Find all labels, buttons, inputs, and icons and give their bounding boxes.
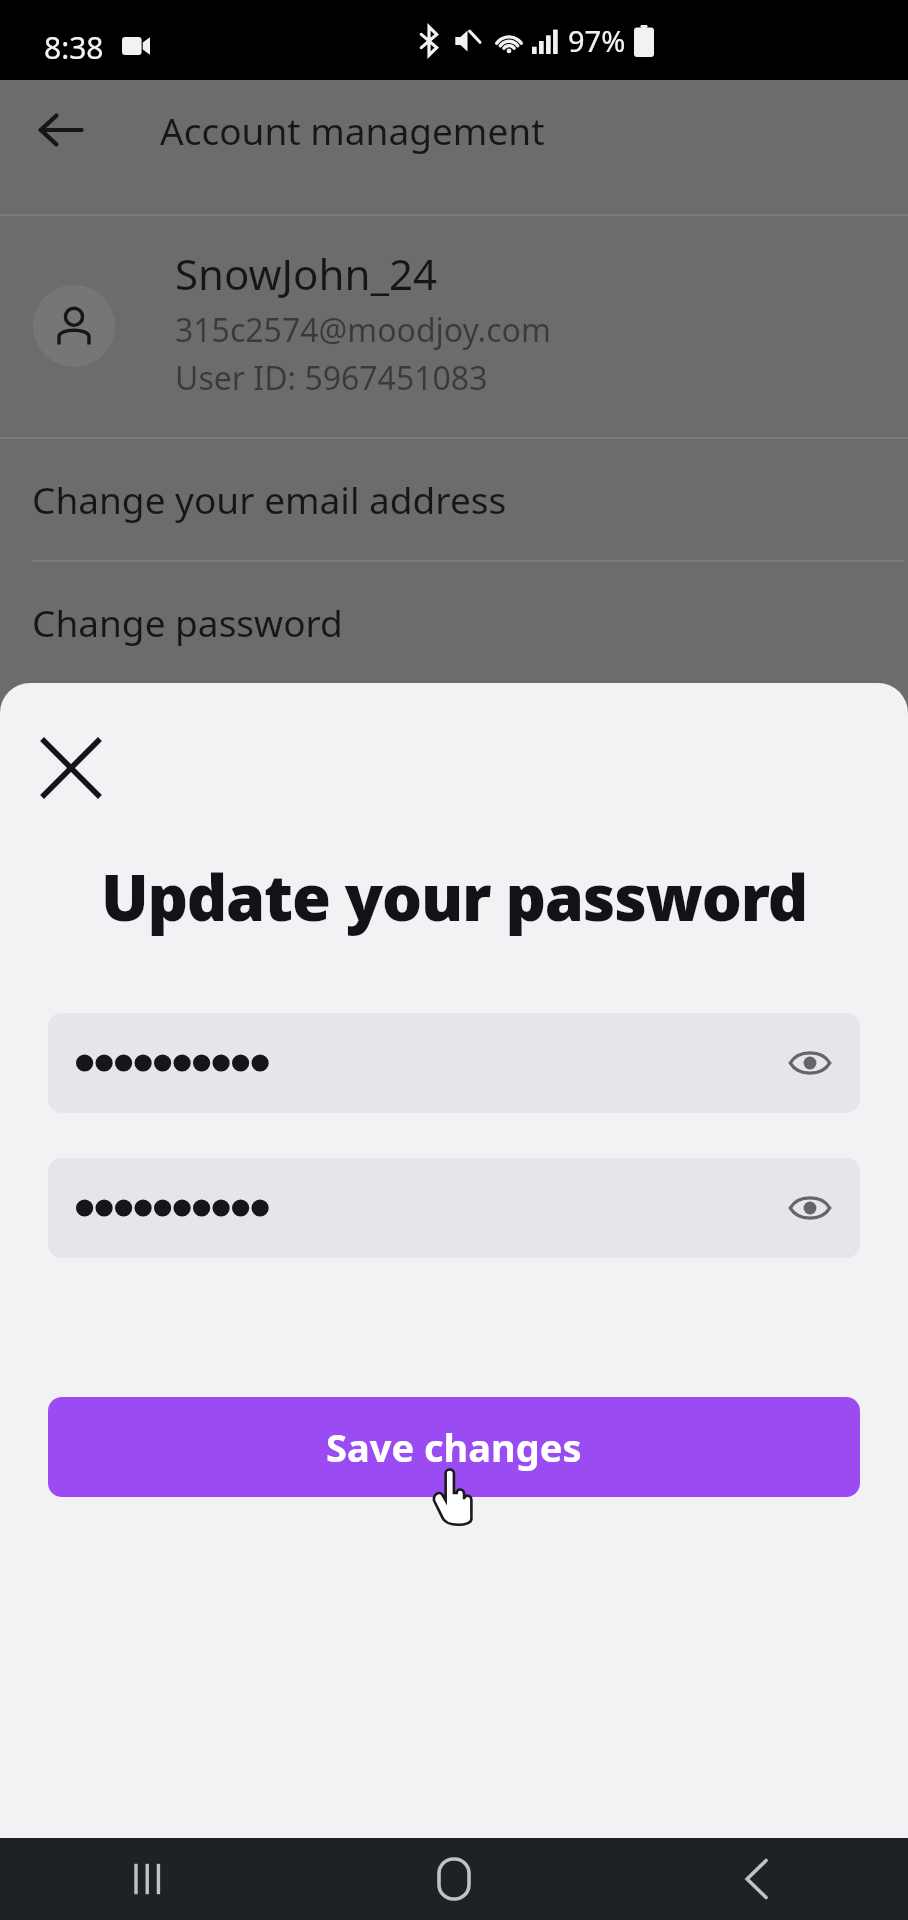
staticText: SnowJohn_24 bbox=[175, 245, 438, 302]
button[interactable]: Change your email address bbox=[0, 438, 908, 560]
button[interactable]: SnowJohn_24 bbox=[0, 216, 908, 436]
staticText: Account management bbox=[160, 105, 545, 155]
staticText: Change your email address bbox=[32, 474, 507, 524]
button[interactable]: Back bbox=[0, 80, 908, 180]
button[interactable]: Show password bbox=[774, 1027, 846, 1099]
button[interactable]: Recents bbox=[0, 1838, 302, 1920]
staticText: 97% bbox=[568, 21, 626, 60]
button[interactable]: Close bbox=[26, 723, 116, 813]
button[interactable]: Show password bbox=[48, 1013, 860, 1113]
staticText: Save changes bbox=[326, 1421, 582, 1473]
staticText: 315c2574@moodjoy.com bbox=[175, 308, 551, 352]
staticText: Update your password bbox=[40, 854, 868, 940]
button[interactable]: Change password bbox=[0, 561, 908, 683]
button[interactable]: Home bbox=[302, 1838, 605, 1920]
staticText: Change password bbox=[32, 597, 343, 647]
button[interactable]: Show password bbox=[48, 1158, 860, 1258]
button[interactable]: Show password bbox=[774, 1172, 846, 1244]
staticText: User ID: 5967451083 bbox=[175, 356, 488, 400]
button[interactable]: Back bbox=[605, 1838, 908, 1920]
button[interactable]: Back bbox=[30, 100, 90, 160]
staticText: 8:38 bbox=[44, 27, 104, 68]
button[interactable]: Save changes bbox=[48, 1397, 860, 1497]
